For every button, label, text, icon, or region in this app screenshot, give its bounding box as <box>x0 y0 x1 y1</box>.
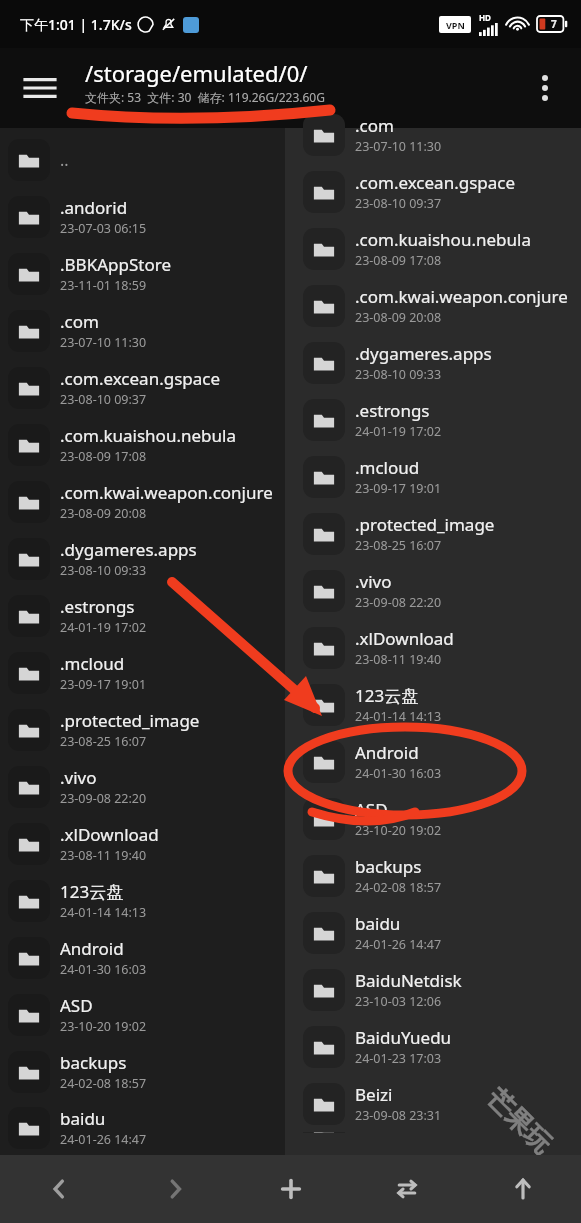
button[interactable]: .mcloud <box>285 448 581 505</box>
staticText: 123云盘 <box>60 880 124 903</box>
button[interactable]: 123云盘 <box>0 872 285 929</box>
button[interactable]: .protected_image <box>0 701 285 758</box>
staticText: .com <box>355 114 394 137</box>
button[interactable]: BaiduNetdisk <box>285 961 581 1018</box>
button[interactable]: .com.excean.gspace <box>0 359 285 416</box>
staticText: 23-08-10 09:37 <box>60 391 147 408</box>
staticText: HD <box>479 12 491 23</box>
button[interactable]: .mcloud <box>0 644 285 701</box>
staticText: /storage/emulated/0/ <box>85 58 308 88</box>
staticText: 23-08-11 19:40 <box>355 651 442 668</box>
button[interactable]: .xlDownload <box>0 815 285 872</box>
button[interactable]: Back <box>0 1155 117 1223</box>
button[interactable]: .andorid <box>0 188 285 245</box>
staticText: baidu <box>60 1107 106 1130</box>
staticText: .vivo <box>355 570 392 593</box>
staticText: 23-08-11 19:40 <box>60 847 147 864</box>
button[interactable]: .com <box>0 302 285 359</box>
staticText: .dygameres.apps <box>60 538 197 561</box>
button[interactable]: .BBKAppStore <box>0 245 285 302</box>
staticText: 23-08-10 09:33 <box>60 562 147 579</box>
staticText: 23-07-03 06:15 <box>60 220 147 237</box>
button[interactable]: Beizi <box>285 1075 581 1132</box>
staticText: 123云盘 <box>355 684 419 707</box>
button[interactable]: Android <box>0 929 285 986</box>
staticText: .xlDownload <box>355 627 454 650</box>
staticText: ASD <box>355 798 388 821</box>
button[interactable]: More options <box>525 68 565 108</box>
staticText: 24-01-14 14:13 <box>355 708 442 725</box>
button[interactable]: .vivo <box>0 758 285 815</box>
staticText: 23-09-08 23:31 <box>355 1107 442 1124</box>
button[interactable]: 123云盘 <box>285 676 581 733</box>
button[interactable]: ASD <box>285 790 581 847</box>
staticText: 23-09-17 19:01 <box>60 676 147 693</box>
staticText: .com.kuaishou.nebula <box>355 228 531 251</box>
button[interactable]: backups <box>285 847 581 904</box>
staticText: 23-08-09 17:08 <box>60 448 147 465</box>
staticText: .com <box>60 310 99 333</box>
button[interactable]: Add <box>233 1155 349 1223</box>
button[interactable]: .com.kwai.weapon.conjure <box>0 473 285 530</box>
staticText: .andorid <box>60 196 128 219</box>
staticText: Beizi <box>355 1083 393 1106</box>
staticText: 24-01-14 14:13 <box>60 904 147 921</box>
staticText: .mcloud <box>355 456 420 479</box>
button[interactable]: .estrongs <box>0 587 285 644</box>
button[interactable]: .dygameres.apps <box>0 530 285 587</box>
button[interactable]: .com.excean.gspace <box>285 163 581 220</box>
staticText: 23-11-01 18:59 <box>60 277 147 294</box>
button[interactable]: BaiduYuedu <box>285 1018 581 1075</box>
staticText: 23-08-09 17:08 <box>355 252 442 269</box>
staticText: .com.kuaishou.nebula <box>60 424 236 447</box>
button[interactable]: .com <box>285 106 581 163</box>
button[interactable]: Forward <box>117 1155 233 1223</box>
staticText: 23-10-20 19:02 <box>355 822 442 839</box>
button[interactable]: .vivo <box>285 562 581 619</box>
staticText: 23-09-08 22:20 <box>355 594 442 611</box>
staticText: 23-08-09 20:08 <box>60 505 147 522</box>
staticText: backups <box>60 1051 127 1074</box>
button[interactable]: .dygameres.apps <box>285 334 581 391</box>
staticText: 23-09-08 22:20 <box>60 790 147 807</box>
button[interactable]: .estrongs <box>285 391 581 448</box>
staticText: 下午1:01 | 1.7K/s <box>20 15 132 34</box>
button[interactable]: Transfer <box>349 1155 465 1223</box>
button[interactable]: .com.kuaishou.nebula <box>285 220 581 277</box>
staticText: .com.kwai.weapon.conjure <box>355 285 568 308</box>
staticText: 23-08-25 16:07 <box>60 733 147 750</box>
staticText: .. <box>60 149 69 171</box>
staticText: 24-01-19 17:02 <box>355 423 442 440</box>
staticText: .mcloud <box>60 652 125 675</box>
staticText: .protected_image <box>355 513 495 536</box>
staticText: backups <box>355 855 422 878</box>
button[interactable]: backups <box>0 1043 285 1100</box>
staticText: .com.excean.gspace <box>60 367 221 390</box>
staticText: Android <box>60 937 124 960</box>
button[interactable]: .. <box>0 131 285 188</box>
staticText: baidu <box>355 912 401 935</box>
button[interactable]: Up <box>465 1155 581 1223</box>
staticText: 23-09-17 19:01 <box>355 480 442 497</box>
button[interactable]: ASD <box>0 986 285 1043</box>
button[interactable]: .com.kuaishou.nebula <box>0 416 285 473</box>
staticText: 24-01-23 17:03 <box>355 1050 442 1067</box>
staticText: 24-01-30 16:03 <box>355 765 442 782</box>
staticText: 23-07-10 11:30 <box>60 334 147 351</box>
button[interactable]: .protected_image <box>285 505 581 562</box>
staticText: .estrongs <box>60 595 135 618</box>
button[interactable]: Android <box>285 733 581 790</box>
staticText: 芒果玩 <box>480 1082 558 1161</box>
button[interactable]: baidu <box>0 1100 285 1155</box>
staticText: 24-01-26 14:47 <box>60 1131 147 1148</box>
staticText: 23-08-10 09:33 <box>355 366 442 383</box>
button[interactable]: Book <box>285 1132 581 1133</box>
button[interactable]: .com.kwai.weapon.conjure <box>285 277 581 334</box>
button[interactable]: Menu <box>18 66 62 110</box>
staticText: 24-02-08 18:57 <box>60 1075 147 1092</box>
button[interactable]: .xlDownload <box>285 619 581 676</box>
staticText: .estrongs <box>355 399 430 422</box>
staticText: .xlDownload <box>60 823 159 846</box>
button[interactable]: baidu <box>285 904 581 961</box>
